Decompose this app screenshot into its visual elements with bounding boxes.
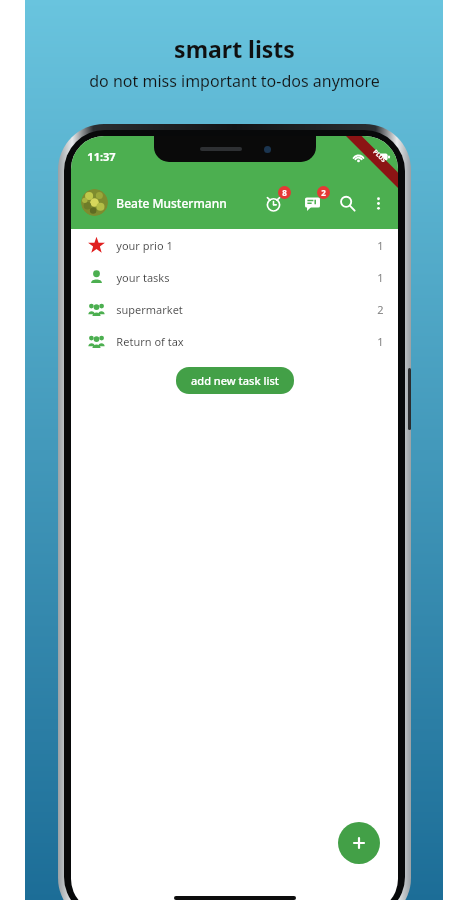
- staticText: Return of tax: [116, 334, 184, 349]
- staticText: 2: [377, 302, 384, 317]
- button[interactable]: your tasks: [71, 261, 398, 293]
- staticText: 1: [377, 270, 384, 285]
- staticText: 8: [282, 187, 287, 198]
- staticText: smart lists: [174, 33, 295, 64]
- button[interactable]: Reminders: [258, 188, 288, 218]
- button[interactable]: Return of tax: [71, 325, 398, 357]
- button[interactable]: Messages: [297, 188, 327, 218]
- staticText: PLUS: [371, 148, 388, 164]
- button[interactable]: add new task list: [176, 367, 294, 394]
- staticText: 1: [377, 334, 384, 349]
- staticText: add new task list: [191, 373, 279, 388]
- staticText: do not miss important to-dos anymore: [89, 70, 380, 92]
- button[interactable]: Add task: [338, 822, 380, 864]
- button[interactable]: Search: [332, 188, 362, 218]
- staticText: 1: [377, 238, 384, 253]
- staticText: your tasks: [116, 270, 170, 285]
- staticText: Beate Mustermann: [116, 195, 227, 211]
- button[interactable]: your prio 1: [71, 229, 398, 261]
- button[interactable]: supermarket: [71, 293, 398, 325]
- staticText: supermarket: [116, 302, 183, 317]
- staticText: your prio 1: [116, 238, 173, 253]
- staticText: 11:37: [87, 149, 116, 164]
- staticText: 2: [321, 187, 326, 198]
- button[interactable]: More options: [364, 189, 392, 217]
